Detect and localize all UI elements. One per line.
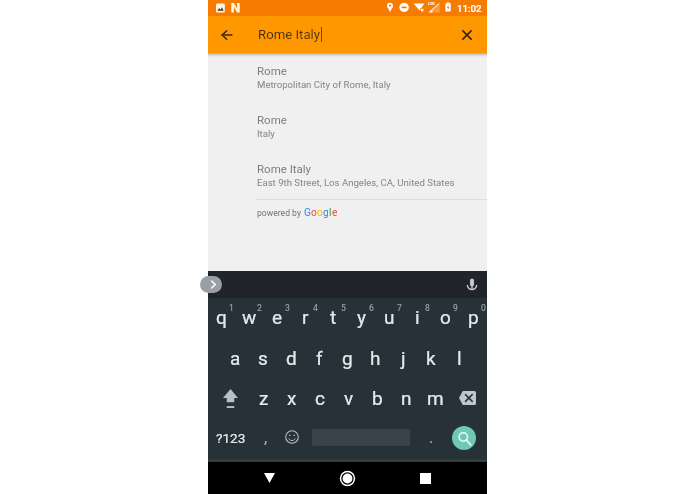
staticText: G xyxy=(304,207,311,219)
staticText: 8 xyxy=(425,303,430,313)
staticText: 5 xyxy=(341,303,346,313)
staticText: q xyxy=(216,306,227,328)
staticText: 3 xyxy=(285,303,290,313)
staticText: 4 xyxy=(313,303,318,313)
staticText: p xyxy=(468,306,479,328)
button[interactable]: i xyxy=(403,298,431,338)
button[interactable]: m xyxy=(421,378,450,418)
staticText: u xyxy=(384,306,395,328)
button[interactable]: q xyxy=(208,298,235,338)
button[interactable]: Show suggestions xyxy=(200,276,222,293)
staticText: l xyxy=(457,347,462,369)
button[interactable]: k xyxy=(417,338,445,378)
staticText: l xyxy=(329,207,332,219)
button[interactable]: g xyxy=(333,338,361,378)
staticText: e xyxy=(272,306,283,328)
button[interactable]: d xyxy=(277,338,305,378)
button[interactable]: j xyxy=(389,338,417,378)
staticText: n xyxy=(401,387,412,409)
button[interactable]: p xyxy=(459,298,487,338)
staticText: a xyxy=(230,347,241,369)
button[interactable]: v xyxy=(334,378,363,418)
button[interactable]: n xyxy=(392,378,421,418)
button[interactable]: o xyxy=(431,298,459,338)
staticText: Rome Italy xyxy=(257,162,312,175)
button[interactable]: h xyxy=(361,338,389,378)
staticText: Rome xyxy=(257,113,287,126)
button[interactable]: s xyxy=(249,338,277,378)
staticText: t xyxy=(330,306,337,328)
staticText: m xyxy=(427,387,444,409)
staticText: East 9th Street, Los Angeles, CA, United… xyxy=(257,177,455,188)
staticText: o xyxy=(311,207,317,219)
button[interactable]: Clear search xyxy=(454,22,480,48)
button[interactable]: Rome Italy xyxy=(208,151,487,200)
staticText: Italy xyxy=(257,128,275,139)
staticText: v xyxy=(344,387,354,409)
staticText: h xyxy=(370,347,381,369)
button[interactable]: Back xyxy=(213,21,241,49)
staticText: b xyxy=(372,387,383,409)
staticText: 0 xyxy=(481,303,486,313)
button[interactable]: ?123 xyxy=(208,418,248,458)
button[interactable]: Voice input xyxy=(463,276,481,294)
staticText: x xyxy=(287,387,297,409)
button[interactable]: Emoji xyxy=(279,418,305,458)
staticText: r xyxy=(302,306,309,328)
button[interactable]: Backspace xyxy=(450,378,487,418)
staticText: Rome Italy xyxy=(258,27,320,42)
staticText: g xyxy=(342,347,353,369)
staticText: g xyxy=(323,207,329,219)
staticText: f xyxy=(316,347,323,369)
button[interactable]: x xyxy=(278,378,306,418)
button[interactable]: a xyxy=(221,338,249,378)
button[interactable]: w xyxy=(235,298,263,338)
staticText: o xyxy=(440,306,451,328)
staticText: j xyxy=(401,347,406,369)
button[interactable]: Back xyxy=(249,462,289,494)
staticText: 9 xyxy=(453,303,458,313)
staticText: 7 xyxy=(397,303,402,313)
button[interactable]: . xyxy=(416,418,443,458)
staticText: s xyxy=(258,347,268,369)
staticText: y xyxy=(357,306,366,328)
staticText: , xyxy=(264,428,268,447)
button[interactable]: r xyxy=(291,298,319,338)
button[interactable]: c xyxy=(306,378,334,418)
staticText: Rome xyxy=(257,64,287,77)
button[interactable]: u xyxy=(375,298,403,338)
staticText: i xyxy=(415,306,420,328)
button[interactable]: z xyxy=(250,378,278,418)
button[interactable]: Rome xyxy=(208,53,487,102)
staticText: d xyxy=(286,347,297,369)
button[interactable]: Recent apps xyxy=(405,462,445,494)
button[interactable]: f xyxy=(305,338,333,378)
button[interactable]: e xyxy=(263,298,291,338)
staticText: 11:02 xyxy=(457,3,482,14)
staticText: 2 xyxy=(257,303,262,313)
staticText: Metropolitan City of Rome, Italy xyxy=(257,79,391,90)
button[interactable]: Search xyxy=(444,418,487,458)
staticText: powered by xyxy=(257,208,304,218)
staticText: o xyxy=(317,207,323,219)
staticText: z xyxy=(259,387,269,409)
button[interactable]: b xyxy=(363,378,392,418)
staticText: 1 xyxy=(229,303,234,313)
staticText: e xyxy=(332,207,338,219)
staticText: . xyxy=(429,428,434,447)
staticText: w xyxy=(242,306,257,328)
button[interactable]: t xyxy=(319,298,347,338)
staticText: LTE xyxy=(428,1,435,6)
staticText: c xyxy=(315,387,325,409)
button[interactable]: Space xyxy=(306,418,416,458)
staticText: k xyxy=(426,347,436,369)
button[interactable]: Rome xyxy=(208,102,487,151)
button[interactable]: y xyxy=(347,298,375,338)
button[interactable]: , xyxy=(249,418,279,458)
staticText: 6 xyxy=(369,303,374,313)
button[interactable]: l xyxy=(445,338,473,378)
staticText: ?123 xyxy=(216,430,246,446)
button[interactable]: Home xyxy=(327,462,367,494)
button[interactable]: Shift xyxy=(215,378,245,418)
